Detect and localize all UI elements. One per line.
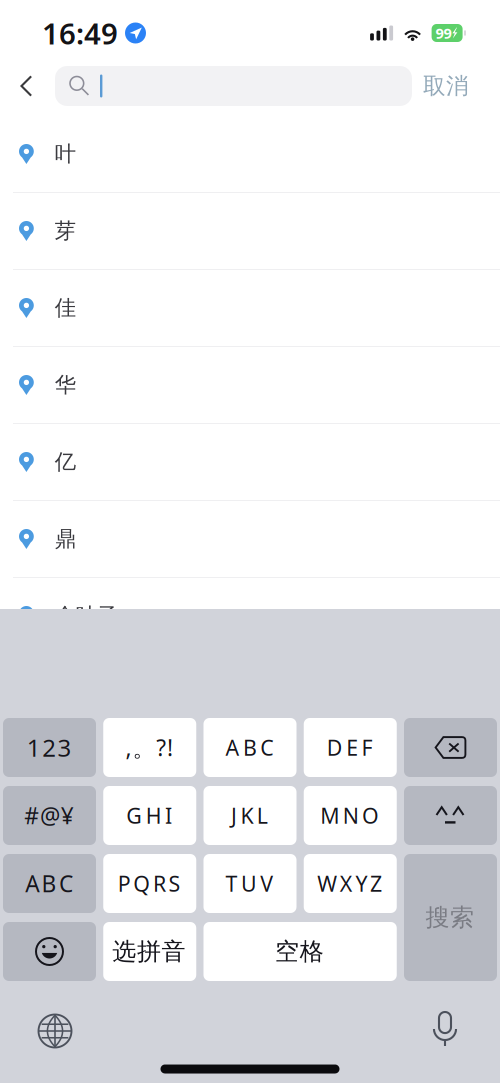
- button[interactable]: #@¥: [3, 786, 96, 845]
- button[interactable]: Dictation: [418, 1006, 472, 1052]
- staticText: 芽: [55, 218, 76, 244]
- staticText: 取消: [423, 72, 469, 100]
- button[interactable]: [404, 786, 497, 845]
- staticText: 99: [436, 23, 452, 43]
- staticText: 鼎: [55, 526, 76, 552]
- staticText: 搜索: [425, 903, 482, 932]
- button[interactable]: 华: [0, 347, 500, 424]
- staticText: TUV: [225, 869, 283, 898]
- staticText: ABC: [225, 733, 283, 762]
- button[interactable]: 亿: [0, 424, 500, 501]
- staticText: #@¥: [24, 800, 81, 830]
- button[interactable]: 金叶子: [0, 578, 500, 655]
- staticText: 123: [27, 732, 79, 763]
- button[interactable]: 取消: [408, 62, 484, 110]
- button[interactable]: WXYZ: [304, 854, 397, 913]
- staticText: WXYZ: [317, 869, 391, 898]
- button[interactable]: MNO: [304, 786, 397, 845]
- staticText: GHI: [126, 801, 181, 830]
- button[interactable]: Back: [3, 62, 51, 110]
- button[interactable]: 搜索: [404, 854, 497, 981]
- button[interactable]: [3, 922, 96, 981]
- button[interactable]: JKL: [203, 786, 296, 845]
- staticText: 金叶子: [55, 603, 118, 629]
- button[interactable]: 选拼音: [103, 922, 196, 981]
- button[interactable]: 芽: [0, 193, 500, 270]
- staticText: 选拼音: [112, 937, 193, 966]
- staticText: 华: [55, 372, 76, 398]
- button[interactable]: ABC: [3, 854, 96, 913]
- button[interactable]: 叶: [0, 116, 500, 193]
- button[interactable]: 鼎: [0, 501, 500, 578]
- staticText: 空格: [275, 937, 331, 966]
- staticText: 叶: [55, 141, 76, 167]
- staticText: 16:49: [42, 13, 118, 52]
- staticText: JKL: [231, 801, 277, 830]
- button[interactable]: 佳: [0, 270, 500, 347]
- button[interactable]: 空格: [203, 922, 397, 981]
- staticText: 佳: [55, 295, 76, 321]
- staticText: ,。?!: [126, 732, 180, 763]
- staticText: 亿: [55, 449, 76, 475]
- button[interactable]: PQRS: [103, 854, 196, 913]
- staticText: DEF: [327, 733, 382, 762]
- button[interactable]: TUV: [203, 854, 296, 913]
- button[interactable]: ,。?!: [103, 718, 196, 777]
- button[interactable]: 123: [3, 718, 96, 777]
- staticText: ABC: [25, 868, 81, 898]
- staticText: PQRS: [118, 869, 189, 898]
- button[interactable]: [404, 718, 497, 777]
- button[interactable]: ABC: [203, 718, 296, 777]
- button[interactable]: Switch keyboard: [28, 1008, 82, 1054]
- button[interactable]: GHI: [103, 786, 196, 845]
- staticText: MNO: [320, 801, 388, 830]
- button[interactable]: DEF: [304, 718, 397, 777]
